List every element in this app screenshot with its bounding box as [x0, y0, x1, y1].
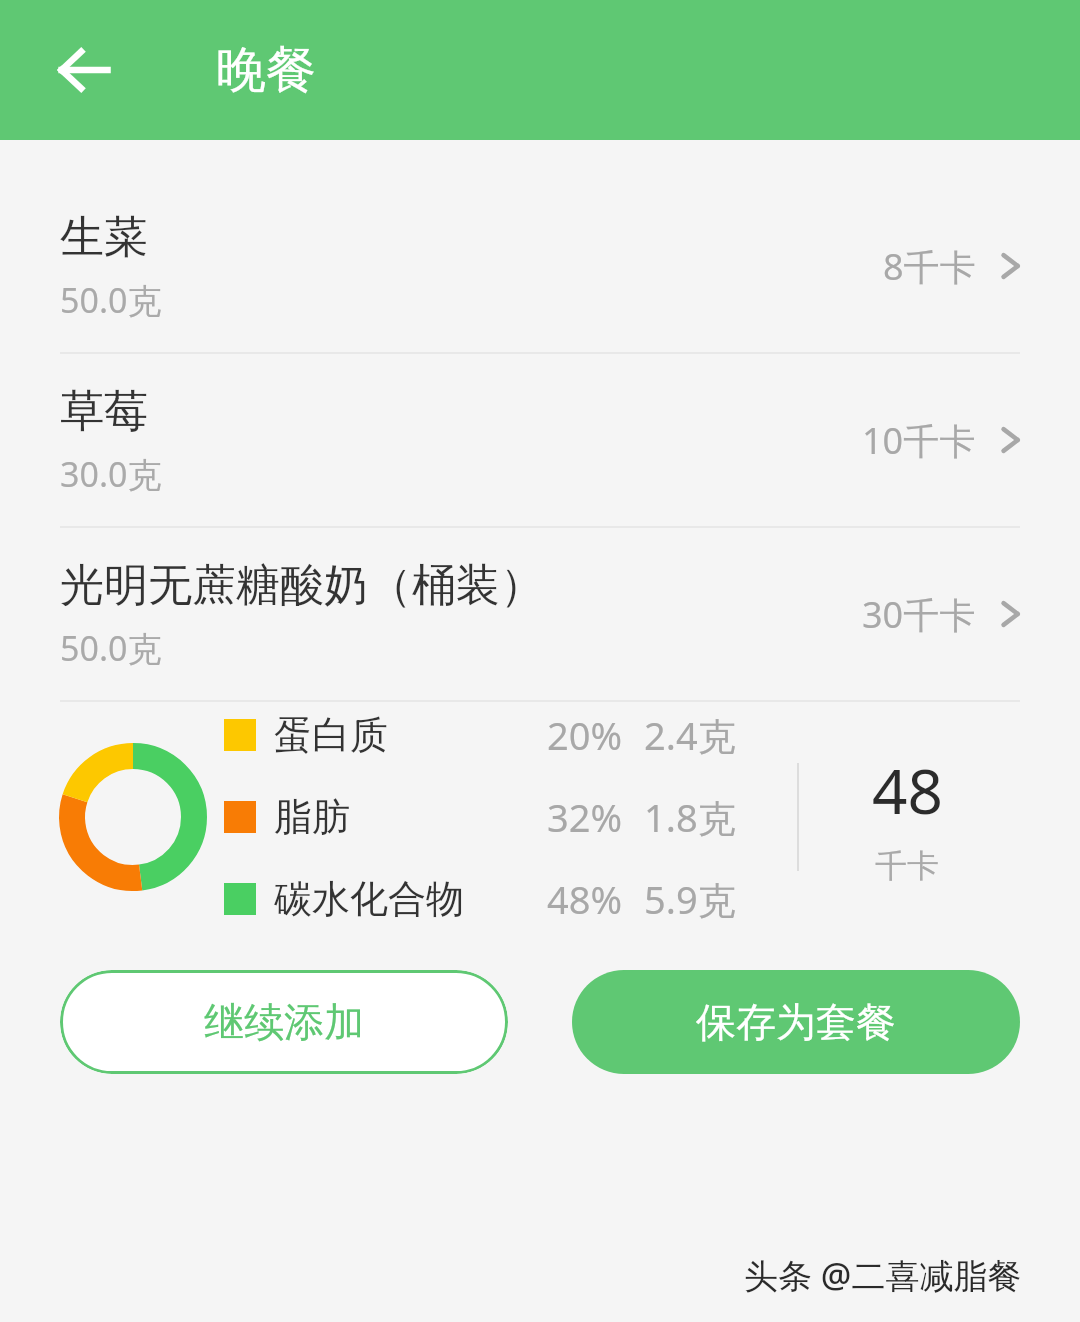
staticText: 生菜: [60, 210, 148, 265]
staticText: 50.0克: [60, 277, 162, 323]
staticText: 草莓: [60, 384, 148, 439]
staticText: 8千卡: [883, 242, 976, 291]
staticText: 继续添加: [204, 997, 364, 1047]
staticText: 48%: [492, 873, 622, 925]
staticText: 20%: [492, 709, 622, 761]
button[interactable]: 生菜: [0, 180, 1080, 352]
staticText: 晚餐: [216, 39, 316, 102]
staticText: 保存为套餐: [696, 997, 896, 1047]
button[interactable]: Back: [36, 22, 132, 118]
staticText: 10千卡: [862, 416, 976, 465]
button[interactable]: 保存为套餐: [572, 970, 1020, 1074]
staticText: 碳水化合物: [274, 875, 464, 923]
staticText: 48: [872, 748, 943, 832]
staticText: 5.9克: [644, 873, 736, 925]
staticText: 脂肪: [274, 793, 350, 841]
staticText: 30.0克: [60, 451, 162, 497]
button[interactable]: 光明无蔗糖酸奶（桶装）: [0, 528, 1080, 700]
staticText: 2.4克: [644, 709, 736, 761]
staticText: 50.0克: [60, 625, 162, 671]
staticText: 30千卡: [862, 590, 976, 639]
button[interactable]: 继续添加: [60, 970, 508, 1074]
staticText: 千卡: [875, 846, 939, 886]
staticText: 蛋白质: [274, 711, 388, 759]
staticText: 1.8克: [644, 791, 736, 843]
staticText: 光明无蔗糖酸奶（桶装）: [60, 558, 544, 613]
staticText: 32%: [492, 791, 622, 843]
button[interactable]: 草莓: [0, 354, 1080, 526]
staticText: 头条 @二喜减脂餐: [744, 1252, 1022, 1298]
